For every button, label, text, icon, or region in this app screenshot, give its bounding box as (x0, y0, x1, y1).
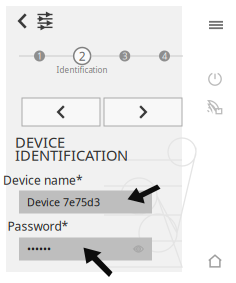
staticText: Device 7e75d3 (27, 195, 100, 209)
staticText: 4 (162, 50, 167, 62)
button[interactable]: Device name (19, 190, 152, 213)
staticText: •••••• (27, 242, 51, 256)
button[interactable]: Connectivity (203, 95, 226, 118)
staticText: 1 (37, 50, 42, 62)
staticText: Password* (7, 218, 68, 234)
staticText: IDENTIFICATION (15, 145, 128, 165)
staticText: Device name* (3, 172, 83, 188)
button[interactable]: Next step (104, 98, 182, 126)
button[interactable]: Password (19, 237, 152, 260)
button[interactable]: Adjust settings (35, 11, 55, 30)
button[interactable]: Home (204, 250, 226, 272)
staticText: 2 (79, 48, 86, 64)
button[interactable]: Menu (205, 17, 227, 33)
staticText: DEVICE (15, 132, 65, 152)
button[interactable]: Previous step (22, 98, 100, 126)
staticText: 3 (122, 50, 127, 62)
button[interactable]: Power (204, 68, 226, 90)
staticText: Identification (56, 65, 107, 75)
button[interactable]: Back (15, 10, 30, 32)
